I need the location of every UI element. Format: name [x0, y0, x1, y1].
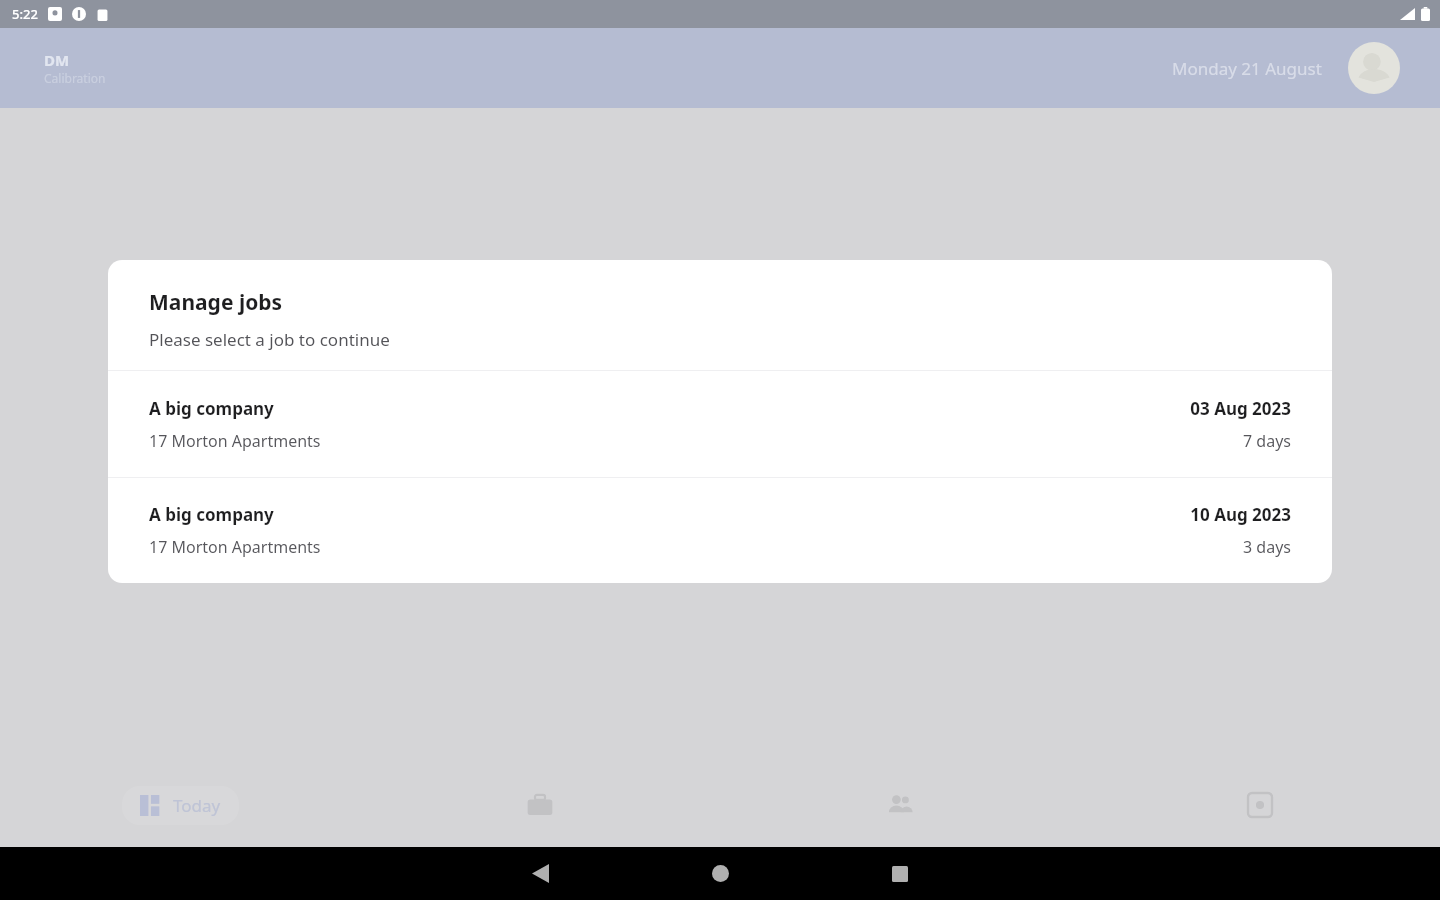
staticText: 17 Morton Apartments	[149, 430, 321, 452]
button[interactable]: Back	[450, 847, 630, 900]
staticText: Manage jobs	[149, 288, 283, 317]
button[interactable]: Recents	[810, 847, 990, 900]
button[interactable]: Profile	[1348, 42, 1400, 94]
button[interactable]: A big company	[108, 478, 1332, 583]
staticText: Today	[173, 794, 221, 817]
button[interactable]: Today	[122, 786, 239, 825]
staticText: Calibration	[44, 70, 106, 86]
button[interactable]: Settings	[1236, 781, 1284, 829]
button[interactable]: Jobs	[516, 781, 564, 829]
staticText: 17 Morton Apartments	[149, 536, 321, 558]
button[interactable]: A big company	[108, 371, 1332, 477]
staticText: 5:22	[12, 5, 38, 23]
staticText: A big company	[149, 397, 274, 420]
button[interactable]: Home	[630, 847, 810, 900]
staticText: 03 Aug 2023	[1190, 397, 1291, 420]
staticText: Please select a job to continue	[149, 328, 390, 351]
button[interactable]: People	[876, 781, 924, 829]
button[interactable]: DM	[44, 50, 106, 86]
staticText: A big company	[149, 503, 274, 526]
staticText: Monday 21 August	[1172, 57, 1322, 80]
staticText: 3 days	[1243, 536, 1291, 558]
staticText: 10 Aug 2023	[1190, 503, 1291, 526]
staticText: DM	[44, 50, 70, 70]
staticText: 7 days	[1243, 430, 1291, 452]
